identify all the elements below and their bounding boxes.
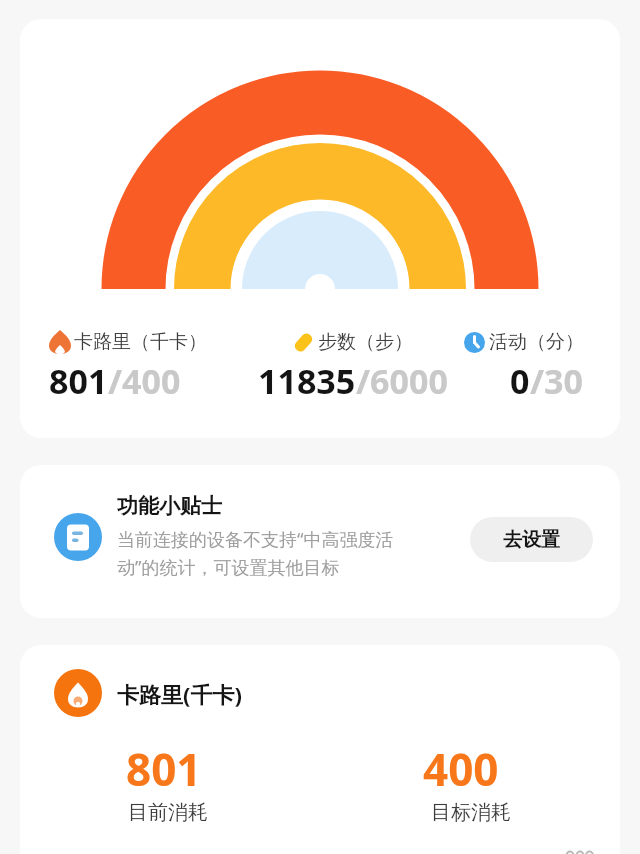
- staticText: 目前消耗: [128, 800, 208, 825]
- staticText: 去设置: [503, 528, 560, 552]
- staticText: /400: [108, 358, 181, 404]
- staticText: 801: [49, 358, 108, 404]
- staticText: 步数（步）: [318, 330, 413, 354]
- staticText: 活动（分）: [489, 330, 584, 354]
- staticText: /30: [530, 358, 584, 404]
- staticText: 0: [510, 358, 530, 404]
- staticText: 801: [126, 739, 202, 799]
- staticText: 目标消耗: [431, 800, 511, 825]
- staticText: 卡路里（千卡）: [74, 330, 207, 354]
- staticText: 400: [423, 739, 499, 799]
- staticText: 卡路里(千卡): [117, 679, 242, 709]
- staticText: 11835: [258, 358, 356, 404]
- button[interactable]: 去设置: [470, 517, 593, 562]
- staticText: /6000: [356, 358, 448, 404]
- button[interactable]: 卡路里(千卡): [20, 645, 620, 854]
- button[interactable]: 功能小贴士: [20, 465, 620, 618]
- staticText: 当前连接的设备不支持“中高强度活 动”的统计，可设置其他目标: [117, 527, 394, 580]
- staticText: 功能小贴士: [117, 493, 222, 519]
